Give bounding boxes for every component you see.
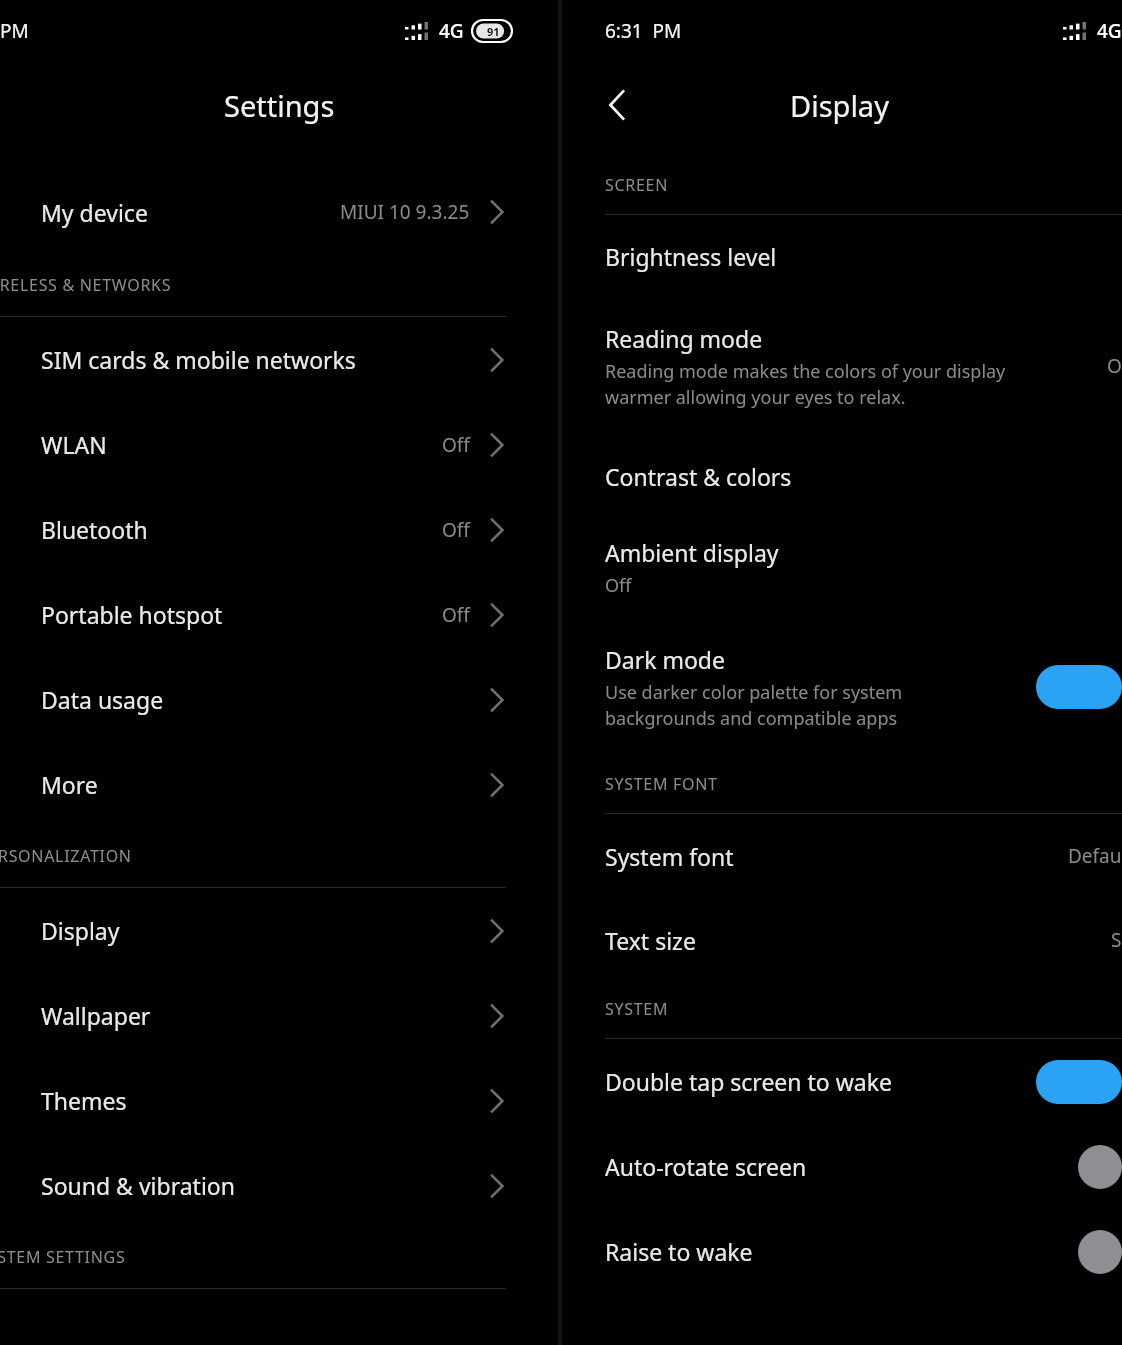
button[interactable]: Toggle on (1036, 665, 1122, 709)
staticText: Off (605, 573, 632, 598)
button[interactable]: Brightness level (562, 215, 1122, 297)
staticText: O (1107, 353, 1122, 379)
staticText: Off (442, 517, 470, 543)
staticText: WIRELESS & NETWORKS (0, 274, 172, 296)
staticText: 4G (439, 18, 464, 44)
button[interactable]: Contrast & colors (562, 435, 1122, 517)
staticText: Use darker color palette for system back… (605, 680, 903, 731)
staticText: Contrast & colors (605, 461, 792, 492)
staticText: Bluetooth (41, 514, 148, 545)
button[interactable]: WLAN (0, 402, 536, 487)
staticText: Dark mode (605, 644, 725, 675)
button[interactable]: Sound & vibration (0, 1143, 536, 1228)
staticText: Display (790, 86, 889, 125)
button[interactable]: SIM cards & mobile networks (0, 317, 536, 402)
button[interactable]: Toggle on (1036, 1060, 1122, 1104)
button[interactable]: Bluetooth (0, 487, 536, 572)
staticText: Raise to wake (605, 1236, 753, 1267)
staticText: Sound & vibration (41, 1170, 235, 1201)
button[interactable]: Portable hotspot (0, 572, 536, 657)
button[interactable]: System font (562, 814, 1122, 898)
staticText: Brightness level (605, 241, 777, 272)
staticText: Portable hotspot (41, 599, 223, 630)
button[interactable]: Ambient display (562, 517, 1122, 617)
button[interactable]: Back (592, 80, 642, 130)
button[interactable]: Wallpaper (0, 973, 536, 1058)
staticText: Double tap screen to wake (605, 1066, 892, 1097)
staticText: WLAN (41, 429, 107, 460)
staticText: SYSTEM FONT (605, 773, 718, 795)
staticText: Reading mode (605, 323, 763, 354)
staticText: MIUI 10 9.3.25 (340, 199, 470, 225)
button[interactable]: Reading mode (562, 297, 1122, 435)
staticText: SIM cards & mobile networks (41, 344, 356, 375)
staticText: Ambient display (605, 537, 779, 568)
button[interactable]: Themes (0, 1058, 536, 1143)
button[interactable]: Data usage (0, 657, 536, 742)
staticText: 91 (487, 24, 500, 39)
button[interactable]: Raise to wake (562, 1209, 1122, 1294)
staticText: Off (442, 602, 470, 628)
staticText: More (41, 769, 98, 800)
staticText: My device (41, 197, 148, 228)
staticText: S (1111, 927, 1122, 953)
staticText: 4G (1097, 18, 1122, 44)
staticText: Display (41, 915, 120, 946)
staticText: SYSTEM (605, 998, 669, 1020)
button[interactable]: More (0, 742, 536, 827)
button[interactable]: Toggle off (1078, 1145, 1122, 1189)
button[interactable]: My device (0, 170, 536, 254)
staticText: Wallpaper (41, 1000, 151, 1031)
button[interactable]: Text size (562, 898, 1122, 982)
staticText: Auto-rotate screen (605, 1151, 807, 1182)
staticText: System font (605, 841, 734, 872)
staticText: Text size (605, 925, 696, 956)
staticText: SCREEN (605, 174, 669, 196)
staticText: Off (442, 432, 470, 458)
button[interactable]: Dark mode (562, 617, 1122, 757)
button[interactable]: Display (0, 888, 536, 973)
staticText: PM (0, 18, 29, 44)
button[interactable]: Double tap screen to wake (562, 1039, 1122, 1124)
staticText: PERSONALIZATION (0, 845, 132, 867)
staticText: SYSTEM SETTINGS (0, 1246, 126, 1268)
staticText: Defau (1068, 843, 1122, 869)
staticText: Themes (41, 1085, 127, 1116)
staticText: Data usage (41, 684, 164, 715)
button[interactable]: Auto-rotate screen (562, 1124, 1122, 1209)
button[interactable]: Toggle off (1078, 1230, 1122, 1274)
staticText: Reading mode makes the colors of your di… (605, 359, 1006, 410)
staticText: 6:31 PM (605, 18, 682, 44)
staticText: Settings (224, 86, 335, 125)
